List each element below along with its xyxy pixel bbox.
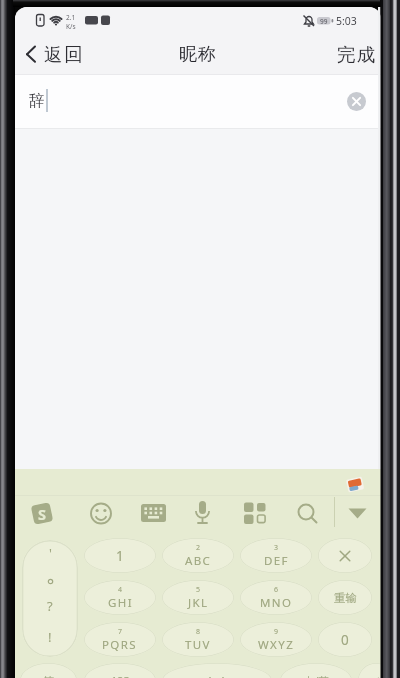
staticText: S: [38, 504, 46, 524]
staticText: 5: [196, 585, 201, 595]
button[interactable]: ': [22, 540, 78, 657]
staticText: 5:03: [336, 14, 357, 28]
staticText: 0: [341, 631, 349, 649]
staticText: DEF: [264, 553, 289, 569]
button[interactable]: 9: [240, 622, 312, 657]
button[interactable]: [244, 502, 267, 524]
staticText: 4: [118, 585, 123, 595]
button[interactable]: 8: [162, 622, 234, 657]
staticText: 123: [111, 673, 130, 678]
button[interactable]: [15, 75, 381, 128]
staticText: ABC: [185, 553, 212, 569]
staticText: 2.1: [66, 13, 76, 22]
button[interactable]: 重输: [318, 580, 372, 615]
staticText: 6: [274, 585, 279, 595]
button[interactable]: 7: [84, 622, 156, 657]
staticText: 99: [320, 17, 328, 25]
staticText: 3: [274, 543, 279, 553]
button[interactable]: [296, 502, 319, 525]
staticText: 7: [118, 627, 123, 637]
staticText: ↵: [371, 674, 381, 678]
button[interactable]: [348, 508, 367, 519]
button[interactable]: 完成: [329, 40, 377, 68]
staticText: JKL: [188, 595, 209, 611]
button[interactable]: [162, 663, 272, 678]
staticText: 2: [196, 543, 201, 553]
button[interactable]: [141, 504, 166, 523]
staticText: 符: [43, 674, 54, 678]
button[interactable]: 中/英: [280, 663, 352, 678]
button[interactable]: [318, 538, 372, 573]
button[interactable]: 5: [162, 580, 234, 615]
button[interactable]: 0: [318, 622, 372, 657]
staticText: K/s: [66, 22, 76, 31]
button[interactable]: [90, 502, 112, 525]
staticText: !: [48, 628, 52, 646]
staticText: WXYZ: [258, 637, 295, 653]
button[interactable]: 1: [84, 538, 156, 573]
button[interactable]: 123: [84, 663, 156, 678]
button[interactable]: 2: [162, 538, 234, 573]
staticText: GHI: [108, 595, 133, 611]
button[interactable]: 3: [240, 538, 312, 573]
button[interactable]: S: [31, 502, 53, 525]
staticText: ?: [47, 597, 53, 615]
button[interactable]: 6: [240, 580, 312, 615]
staticText: ': [49, 544, 52, 562]
staticText: PQRS: [102, 637, 138, 653]
staticText: 完成: [337, 43, 377, 66]
staticText: 8: [196, 627, 201, 637]
staticText: 返回: [44, 43, 85, 66]
button[interactable]: [347, 92, 366, 111]
button[interactable]: ↵: [358, 663, 381, 678]
button[interactable]: 符: [20, 663, 77, 678]
staticText: 中/英: [304, 674, 329, 678]
staticText: 辞: [29, 91, 45, 111]
button[interactable]: 4: [84, 580, 156, 615]
button[interactable]: [195, 501, 210, 525]
staticText: MNO: [260, 595, 293, 611]
staticText: 重输: [334, 591, 357, 605]
staticText: 9: [274, 627, 279, 637]
staticText: 1: [116, 547, 124, 565]
staticText: TUV: [185, 637, 211, 653]
staticText: 昵称: [179, 43, 217, 66]
button[interactable]: 返回: [23, 40, 103, 68]
